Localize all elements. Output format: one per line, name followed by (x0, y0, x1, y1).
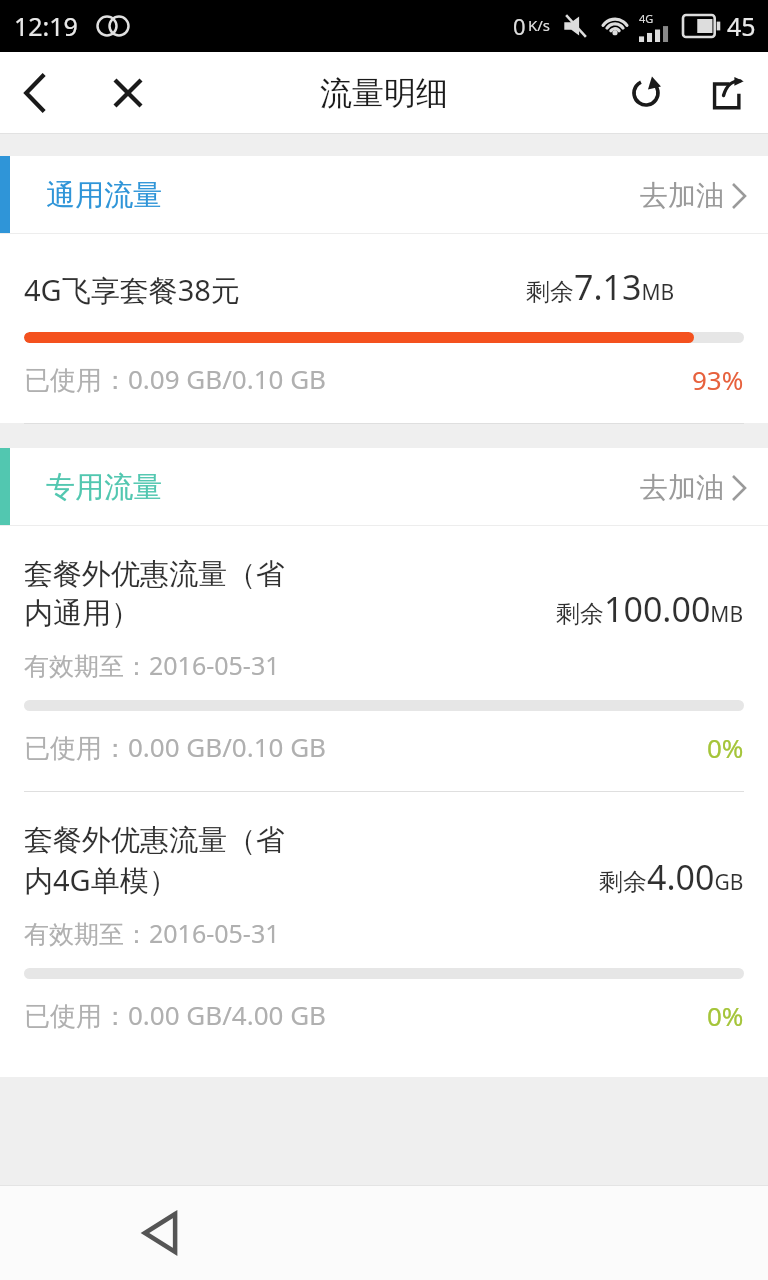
staticText: 0 (513, 11, 526, 41)
staticText: 45 (727, 9, 756, 43)
button[interactable]: Share (688, 52, 768, 134)
staticText: 流量明细 (320, 73, 448, 113)
staticText: 有效期至：2016-05-31 (24, 916, 280, 950)
staticText: 已使用：0.09 GB/0.10 GB (24, 361, 327, 397)
staticText: 通用流量 (46, 177, 162, 214)
staticText: 有效期至：2016-05-31 (24, 648, 280, 682)
button[interactable]: 通用流量 (0, 156, 768, 234)
staticText: 剩余4.00GB (599, 854, 744, 900)
staticText: 去加油 (640, 470, 724, 505)
staticText: 剩余100.00MB (556, 586, 744, 632)
button[interactable]: Back (0, 52, 70, 134)
staticText: 0% (707, 730, 744, 765)
button[interactable]: Close (92, 52, 164, 134)
staticText: 专用流量 (46, 469, 162, 506)
button[interactable]: Back (110, 1185, 210, 1280)
staticText: 0% (707, 998, 744, 1033)
staticText: 12:19 (14, 9, 78, 43)
button[interactable]: 专用流量 (0, 448, 768, 526)
staticText: 剩余7.13MB (526, 264, 675, 310)
staticText: K/s (528, 15, 551, 35)
staticText: 套餐外优惠流量（省内4G单模） (24, 822, 311, 900)
staticText: 93% (692, 362, 744, 397)
staticText: 已使用：0.00 GB/4.00 GB (24, 997, 327, 1033)
staticText: 已使用：0.00 GB/0.10 GB (24, 729, 327, 765)
button[interactable]: 套餐外优惠流量（省内通用） (0, 526, 768, 791)
staticText: 4G飞享套餐38元 (24, 270, 240, 310)
staticText: 去加油 (640, 178, 724, 213)
staticText: 4G (639, 11, 654, 26)
button[interactable]: 4G飞享套餐38元 (0, 234, 768, 423)
button[interactable]: Refresh (610, 52, 682, 134)
button[interactable]: 套餐外优惠流量（省内4G单模） (0, 792, 768, 1059)
staticText: 套餐外优惠流量（省内通用） (24, 556, 290, 632)
